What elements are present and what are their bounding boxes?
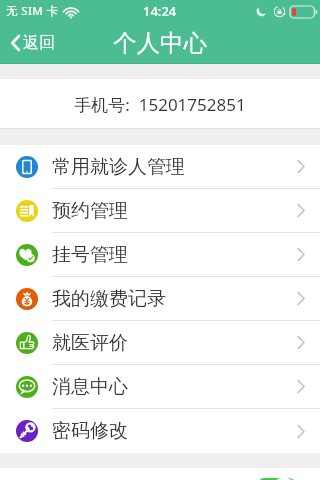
button[interactable]: Toggle [258, 478, 295, 480]
staticText: 我的缴费记录 [52, 287, 166, 311]
staticText: 消息中心 [52, 375, 128, 399]
button[interactable]: 预约管理 [0, 189, 320, 232]
staticText: 手机号: 15201752851 [74, 93, 246, 116]
staticText: 个人中心 [113, 28, 207, 58]
staticText: 无 SIM 卡 [6, 3, 59, 19]
button[interactable]: 挂号管理 [0, 233, 320, 276]
staticText: 返回 [23, 33, 55, 53]
staticText: 就医评价 [52, 331, 128, 355]
staticText: 密码修改 [52, 419, 128, 443]
button[interactable]: 就医评价 [0, 321, 320, 364]
button[interactable]: 我的缴费记录 [0, 277, 320, 320]
staticText: 常用就诊人管理 [52, 155, 185, 179]
button[interactable]: 消息中心 [0, 365, 320, 408]
button[interactable]: 密码修改 [0, 409, 320, 453]
button[interactable]: 常用就诊人管理 [0, 145, 320, 188]
staticText: 14:24 [143, 2, 177, 20]
staticText: 预约管理 [52, 199, 128, 223]
staticText: 挂号管理 [52, 243, 128, 267]
button[interactable]: Back [0, 22, 69, 64]
